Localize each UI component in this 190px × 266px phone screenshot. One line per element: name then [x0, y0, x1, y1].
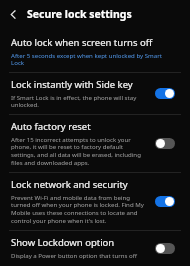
button[interactable]: Switch on — [155, 196, 175, 207]
staticText: Prevent Wi-Fi and mobile data from being… — [11, 193, 147, 225]
button[interactable]: Switch on — [155, 88, 175, 99]
staticText: Secure lock settings — [27, 7, 132, 21]
button[interactable]: Show Lockdown option — [0, 231, 190, 266]
button[interactable]: Auto factory reset — [0, 115, 190, 172]
button[interactable]: Back — [0, 1, 27, 28]
button[interactable]: Switch off — [155, 138, 175, 149]
staticText: Show Lockdown option — [11, 236, 115, 249]
button[interactable]: Auto lock when screen turns off — [0, 34, 190, 72]
staticText: After 5 seconds except when kept unlocke… — [11, 51, 175, 67]
button[interactable]: Switch off — [155, 243, 175, 254]
staticText: Lock instantly with Side key — [11, 78, 133, 91]
button[interactable]: Lock network and security — [0, 173, 190, 230]
staticText: Auto factory reset — [11, 120, 91, 133]
staticText: If Smart Lock is in effect, the phone wi… — [11, 93, 147, 109]
staticText: Display a Power button option that turns… — [11, 251, 147, 261]
staticText: Lock network and security — [11, 178, 128, 191]
staticText: After 15 incorrect attempts to unlock yo… — [11, 135, 147, 167]
button[interactable]: Lock instantly with Side key — [0, 73, 190, 114]
staticText: Auto lock when screen turns off — [11, 36, 153, 49]
